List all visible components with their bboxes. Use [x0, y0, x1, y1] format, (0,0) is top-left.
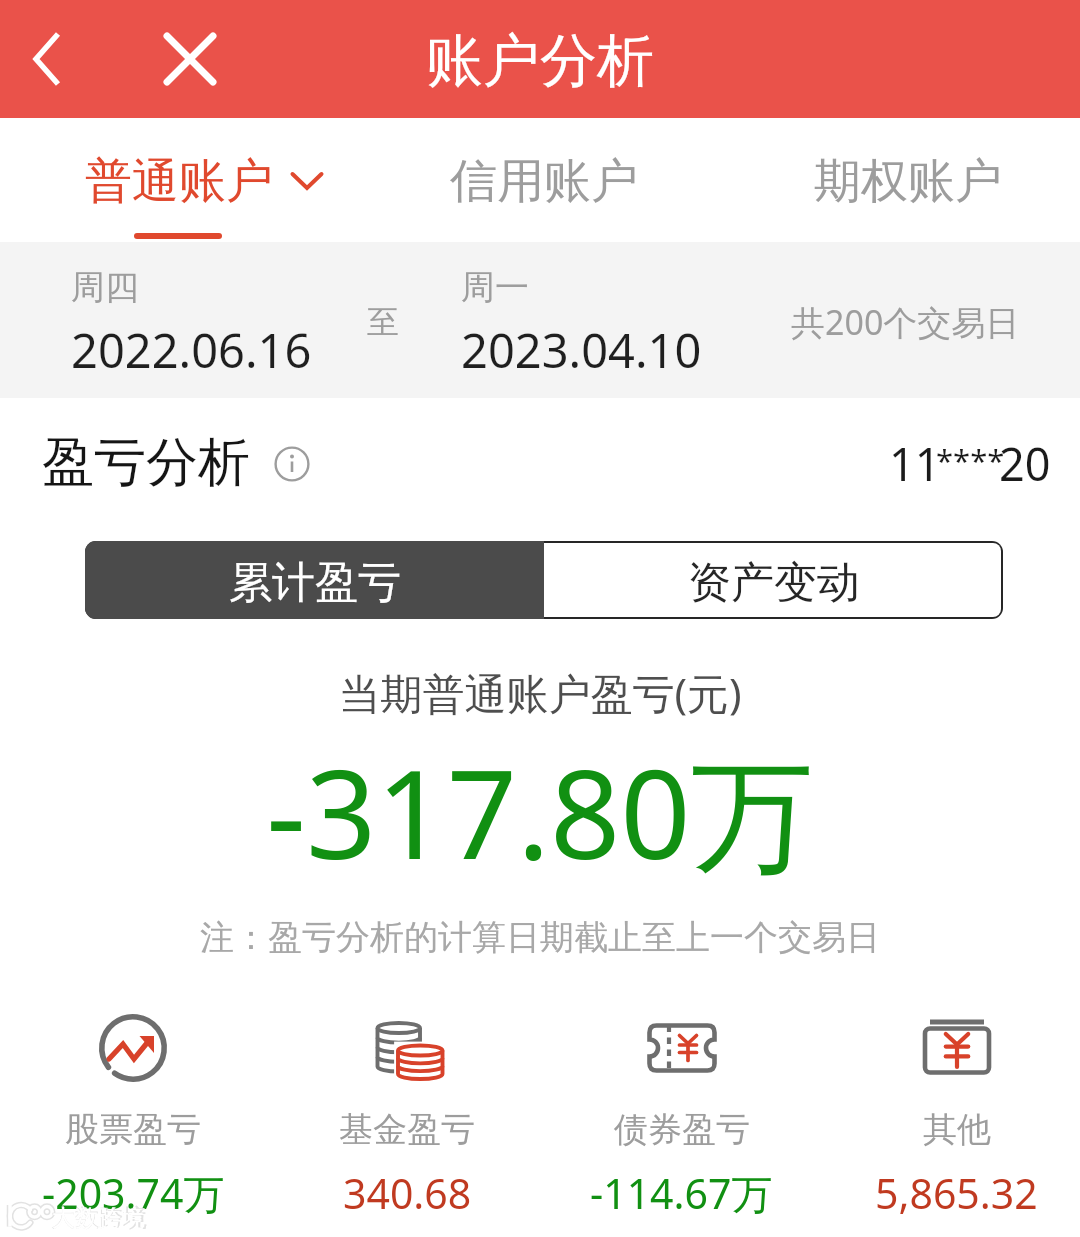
staticText: 期权账户: [814, 152, 1002, 211]
staticText: 大数跨境: [51, 1203, 147, 1233]
button[interactable]: 普通账户: [85, 118, 324, 242]
staticText: 大数跨境: [52, 1204, 144, 1233]
staticText: 周一: [461, 266, 529, 309]
staticText: 累计盈亏: [229, 556, 401, 610]
button[interactable]: 股票盈亏: [0, 1008, 270, 1221]
button[interactable]: 资产变动: [544, 541, 1003, 619]
staticText: 股票盈亏: [65, 1108, 201, 1151]
staticText: 11: [889, 433, 941, 494]
staticText: 340.68: [343, 1165, 472, 1221]
staticText: 普通账户: [85, 152, 273, 211]
button[interactable]: 基金盈亏: [270, 1008, 544, 1221]
staticText: 债券盈亏: [614, 1108, 750, 1151]
button[interactable]: Info: [272, 444, 312, 484]
staticText: 注：盈亏分析的计算日期截止至上一个交易日: [0, 916, 1080, 959]
staticText: -114.67万: [590, 1165, 773, 1221]
button[interactable]: 累计盈亏: [85, 541, 544, 619]
staticText: ****: [936, 439, 1005, 481]
button[interactable]: 债券盈亏: [544, 1008, 819, 1221]
staticText: 5,865.32: [875, 1165, 1038, 1221]
staticText: -317.80万: [0, 728, 1080, 896]
button[interactable]: Close: [150, 19, 230, 99]
button[interactable]: 信用账户: [450, 118, 638, 242]
button[interactable]: 其他: [819, 1008, 1080, 1221]
staticText: 周四: [71, 266, 139, 309]
staticText: 2022.06.16: [71, 318, 312, 382]
staticText: 当期普通账户盈亏(元): [0, 664, 1080, 721]
staticText: -203.74万: [42, 1165, 225, 1221]
staticText: 至: [367, 302, 399, 342]
button[interactable]: 周四: [71, 266, 312, 382]
button[interactable]: Back: [8, 19, 88, 99]
staticText: 资产变动: [688, 556, 860, 610]
staticText: 账户分析: [426, 25, 654, 97]
button[interactable]: 周一: [461, 266, 702, 382]
staticText: 基金盈亏: [339, 1108, 475, 1151]
button[interactable]: 期权账户: [814, 118, 1002, 242]
staticText: 信用账户: [450, 152, 638, 211]
staticText: 2023.04.10: [461, 318, 702, 382]
staticText: 盈亏分析: [42, 430, 250, 496]
staticText: 共200个交易日: [791, 299, 1020, 345]
staticText: 20: [999, 433, 1051, 494]
staticText: 其他: [923, 1108, 991, 1151]
